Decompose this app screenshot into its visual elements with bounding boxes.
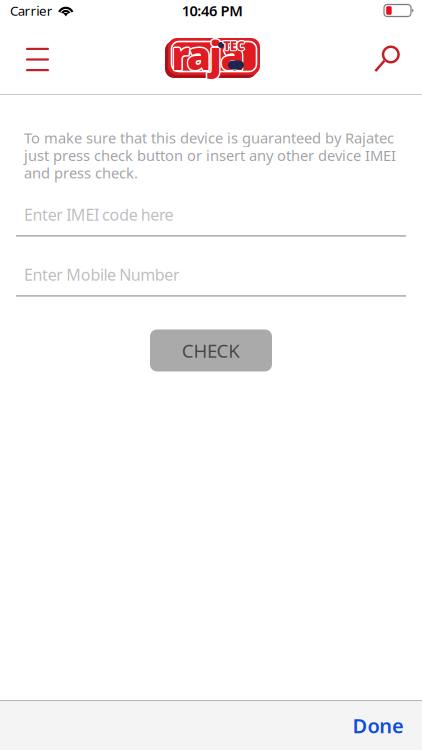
staticText: raja [170, 29, 243, 81]
staticText: raja [173, 29, 246, 81]
staticText: raja [171, 28, 243, 80]
staticText: raja [172, 28, 244, 79]
staticText: TEC [222, 38, 244, 54]
button[interactable]: Search [359, 21, 413, 94]
staticText: Enter IMEI code here [24, 204, 173, 225]
staticText: TEC [224, 38, 246, 54]
staticText: To make sure that this device is guarant… [24, 128, 396, 182]
staticText: TEC [223, 37, 245, 53]
staticText: TEC [222, 37, 244, 53]
staticText: Enter Mobile Number [24, 264, 180, 285]
staticText: raja [172, 31, 244, 82]
staticText: TEC [224, 37, 246, 53]
staticText: raja [171, 30, 243, 82]
staticText: raja [172, 28, 245, 80]
staticText: TEC [224, 37, 246, 53]
button[interactable]: Enter Mobile Number [0, 260, 422, 296]
staticText: Carrier [10, 2, 53, 19]
staticText: TEC [223, 39, 245, 54]
button[interactable]: Rajatec home [163, 37, 259, 78]
staticText: raja [172, 29, 244, 81]
staticText: TEC [223, 36, 245, 52]
staticText: Done [353, 712, 404, 739]
button[interactable]: CHECK [150, 329, 272, 371]
button[interactable]: Done [345, 705, 412, 746]
staticText: raja [172, 30, 245, 82]
staticText: CHECK [182, 338, 240, 363]
staticText: 10:46 PM [182, 1, 243, 20]
staticText: TEC [222, 37, 244, 53]
button[interactable]: Menu [9, 21, 63, 94]
button[interactable]: Enter IMEI code here [0, 200, 422, 236]
